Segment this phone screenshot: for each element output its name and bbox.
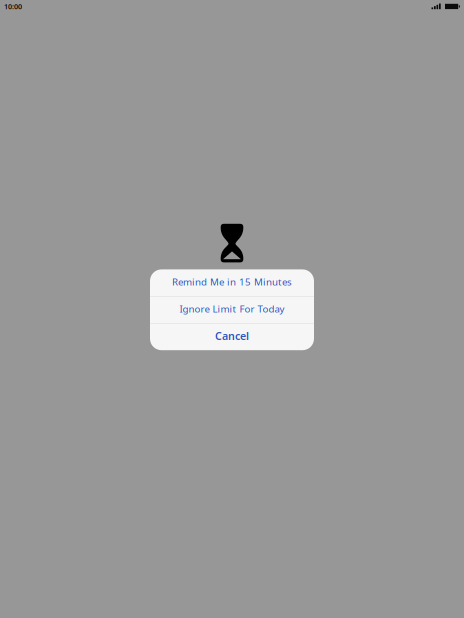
staticText: 10:00	[4, 2, 22, 11]
button[interactable]: Ignore Limit For Today	[150, 296, 314, 323]
button[interactable]: Remind Me in 15 Minutes	[150, 269, 314, 296]
staticText: Remind Me in 15 Minutes	[172, 275, 292, 288]
staticText: Cancel	[215, 329, 249, 343]
staticText: Ignore Limit For Today	[179, 302, 284, 315]
button[interactable]: Cancel	[150, 324, 314, 350]
